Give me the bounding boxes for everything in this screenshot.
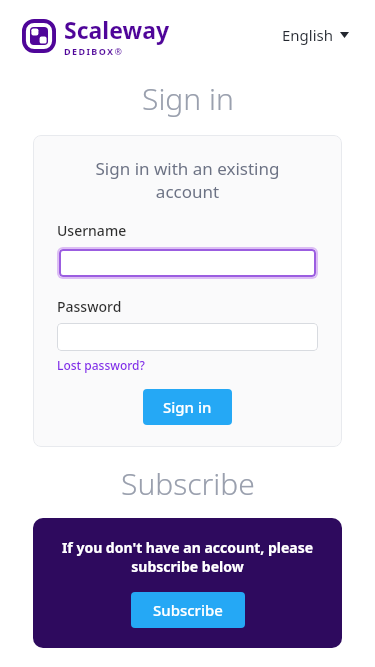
button[interactable]: Subscribe bbox=[131, 592, 245, 628]
staticText: Subscribe bbox=[121, 463, 255, 504]
button[interactable]: Select language, English bbox=[278, 21, 353, 49]
staticText: Sign in with an existing account bbox=[57, 157, 318, 203]
button[interactable]: Sign in bbox=[143, 389, 232, 425]
staticText: DEDIBOX® bbox=[64, 45, 124, 57]
staticText: If you don't have an account, please sub… bbox=[55, 538, 320, 576]
staticText: Sign in bbox=[163, 397, 212, 417]
button[interactable]: Scaleway bbox=[22, 14, 170, 57]
button[interactable]: Password field bbox=[57, 323, 318, 351]
staticText: Scaleway bbox=[64, 14, 170, 45]
staticText: Subscribe bbox=[153, 600, 223, 620]
staticText: English bbox=[282, 25, 334, 45]
staticText: Username bbox=[57, 221, 127, 240]
button[interactable]: Lost password? bbox=[57, 357, 145, 373]
staticText: Password bbox=[57, 297, 122, 316]
staticText: Sign in bbox=[142, 78, 234, 119]
button[interactable]: Username field bbox=[57, 247, 318, 279]
staticText: Lost password? bbox=[57, 357, 145, 373]
